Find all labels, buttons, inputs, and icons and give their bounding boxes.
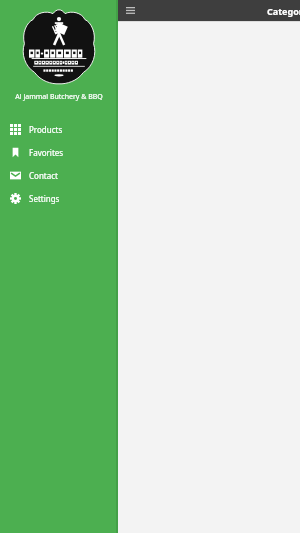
staticText: Contact [29, 170, 58, 181]
staticText: Settings [29, 193, 60, 204]
staticText: Categories [267, 5, 300, 17]
button[interactable]: Contact [0, 164, 118, 187]
staticText: Al Jammal Butchery & BBQ [15, 92, 103, 102]
button[interactable]: Open navigation menu [122, 3, 138, 19]
staticText: Favorites [29, 147, 64, 158]
button[interactable]: Favorites [0, 141, 118, 164]
button[interactable]: Settings [0, 187, 118, 210]
button[interactable]: Products [0, 118, 118, 141]
staticText: Products [29, 124, 63, 135]
